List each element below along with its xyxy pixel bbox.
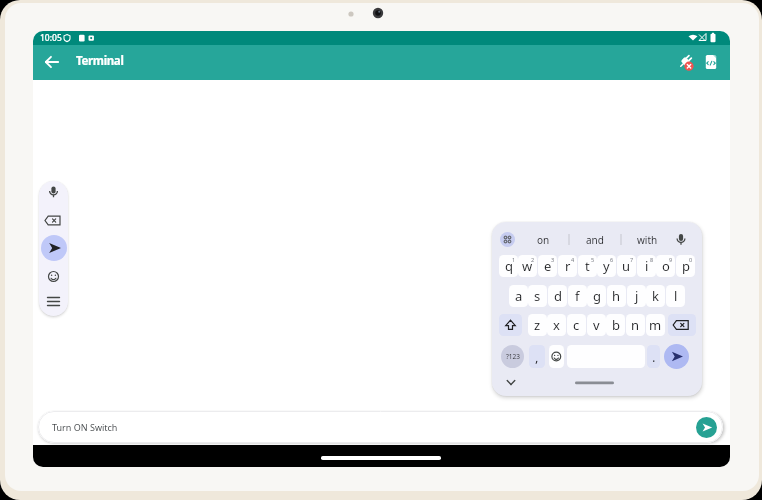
button[interactable] [549,345,564,368]
button[interactable]: on [529,231,557,248]
staticText: 7 [630,256,634,263]
button[interactable] [39,289,68,316]
staticText: d [554,287,562,305]
staticText: x [553,316,560,334]
button[interactable]: , [529,345,545,368]
button[interactable]: m [646,314,665,336]
button[interactable]: y [597,255,616,277]
staticText: Terminal [76,53,124,69]
staticText: and [586,233,604,247]
button[interactable] [672,49,698,75]
button[interactable] [39,49,65,75]
staticText: 5 [591,256,595,263]
button[interactable] [39,263,68,289]
button[interactable]: q [499,255,518,277]
staticText: j [635,287,639,305]
staticText: 10:05 [40,32,62,44]
button[interactable]: h [607,285,626,307]
button[interactable]: v [587,314,606,336]
staticText: y [603,257,610,275]
button[interactable]: x [547,314,566,336]
button[interactable]: w [518,255,537,277]
button[interactable]: a [509,285,528,307]
staticText: 1 [512,256,516,263]
button[interactable]: ?123 [501,345,524,368]
button[interactable]: z [528,314,547,336]
button[interactable] [321,456,441,460]
staticText: f [575,287,580,305]
button[interactable]: l [666,285,685,307]
button[interactable]: r [558,255,577,277]
staticText: 2 [531,256,535,263]
staticText: t [585,257,590,275]
staticText: i [645,257,649,275]
button[interactable] [500,232,515,247]
button[interactable]: g [587,285,606,307]
staticText: Turn ON Switch [52,421,118,433]
button[interactable]: e [538,255,557,277]
staticText: 8 [650,256,654,263]
staticText: w [522,257,533,275]
staticText: o [662,257,670,275]
staticText: k [652,287,659,305]
button[interactable]: f [568,285,587,307]
staticText: n [631,316,640,334]
button[interactable]: p [676,255,695,277]
button[interactable]: with [632,231,662,248]
staticText: h [612,287,621,305]
staticText: u [622,257,631,275]
staticText: l [674,287,678,305]
staticText: a [515,287,523,305]
staticText: p [682,257,690,275]
staticText: v [593,316,600,334]
staticText: 4 [571,256,575,263]
button[interactable]: d [548,285,567,307]
staticText: 6 [610,256,614,263]
button[interactable] [664,344,689,369]
staticText: ?123 [506,352,520,361]
staticText: , [535,348,539,366]
button[interactable] [39,181,68,209]
staticText: c [573,316,580,334]
staticText: z [534,316,541,334]
button[interactable]: o [656,255,675,277]
staticText: with [637,233,658,247]
staticText: 9 [669,256,673,263]
button[interactable] [668,314,696,336]
button[interactable]: b [606,314,625,336]
button[interactable] [698,49,724,75]
staticText: g [593,287,601,305]
staticText: s [534,287,541,305]
button[interactable] [696,417,717,438]
button[interactable]: s [528,285,547,307]
staticText: q [505,257,513,275]
button[interactable]: i [637,255,656,277]
button[interactable]: j [627,285,646,307]
staticText: 3 [551,256,555,263]
button[interactable]: u [617,255,636,277]
button[interactable] [499,314,522,336]
button[interactable] [41,235,67,261]
button[interactable]: c [567,314,586,336]
button[interactable]: k [646,285,665,307]
button[interactable]: and [580,231,610,248]
staticText: 0 [689,256,693,263]
button[interactable] [39,209,68,235]
staticText: e [544,257,552,275]
button[interactable]: . [647,345,660,368]
staticText: b [612,316,620,334]
button[interactable]: n [626,314,645,336]
button[interactable]: t [578,255,597,277]
staticText: . [652,348,656,366]
staticText: m [649,316,662,334]
staticText: on [537,233,550,247]
staticText: r [565,257,571,275]
